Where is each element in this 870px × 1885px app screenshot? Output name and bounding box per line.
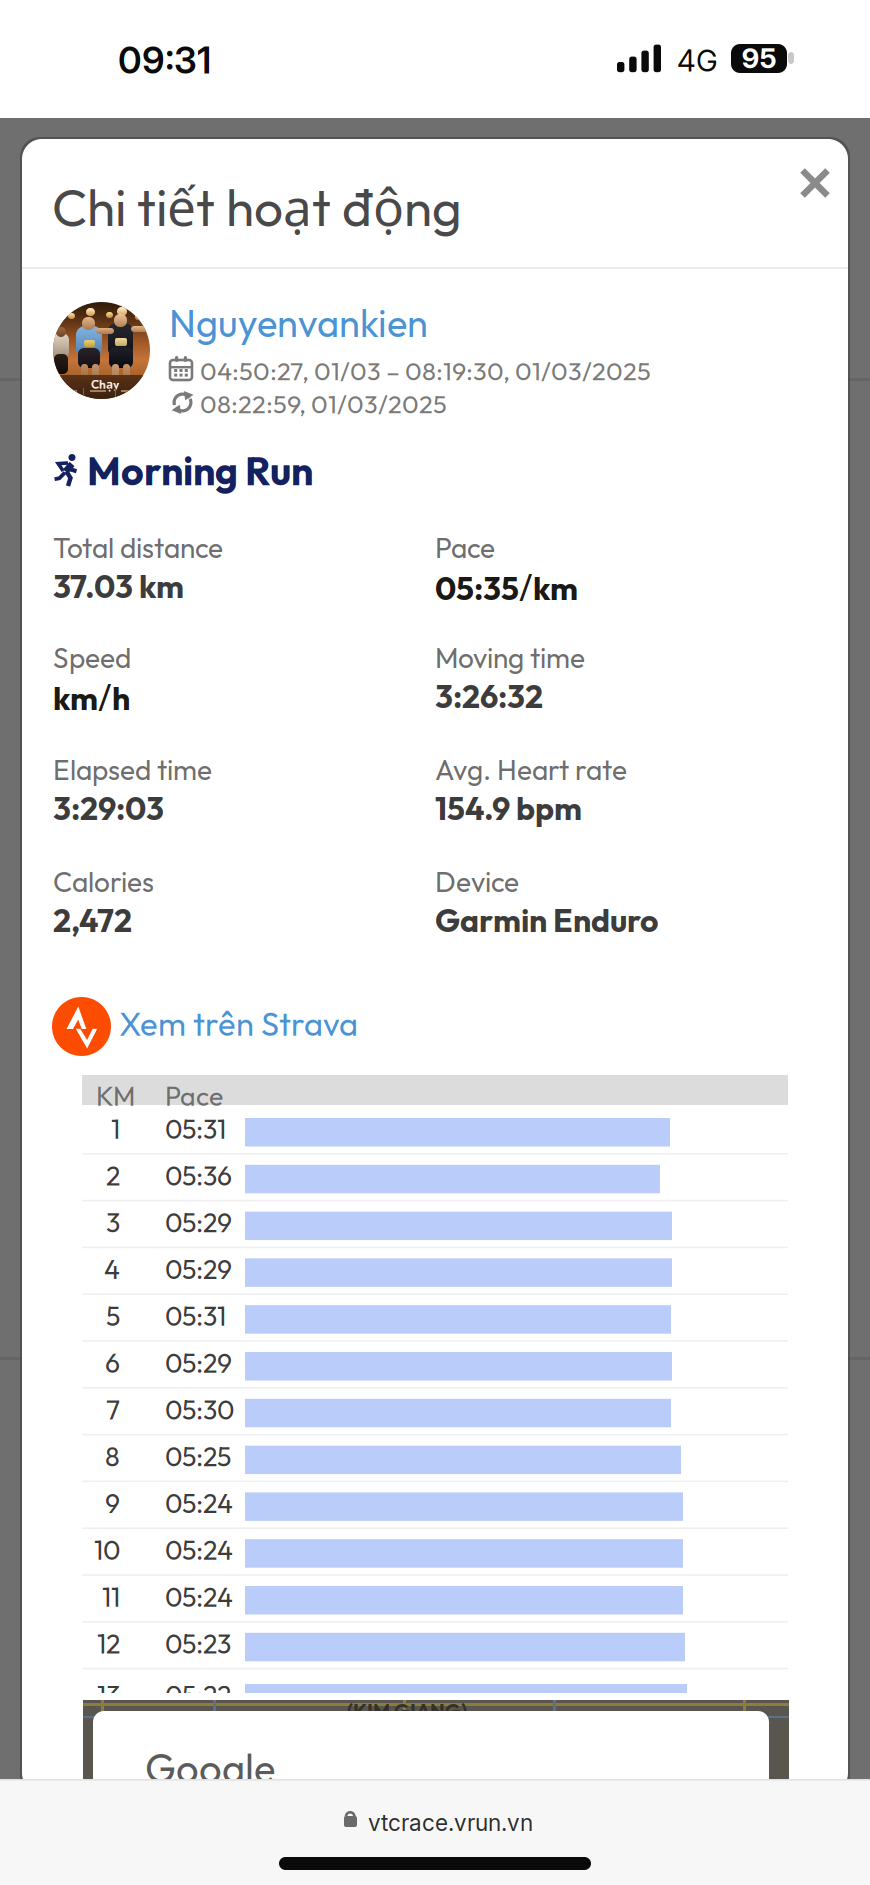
staticText: Moving time	[435, 640, 585, 675]
staticText: 5	[106, 1299, 120, 1333]
staticText: 05:25	[165, 1440, 231, 1473]
staticText: vtcrace.vrun.vn	[368, 1809, 533, 1836]
staticText: 2	[106, 1159, 120, 1192]
staticText: 05:31	[165, 1299, 226, 1333]
staticText: 05:29	[165, 1252, 232, 1286]
staticText: 05:29	[165, 1206, 232, 1239]
staticText: Xem trên Strava	[119, 1003, 358, 1044]
button[interactable]: vtcrace.vrun.vn	[344, 1809, 548, 1835]
staticText: 08:22:59, 01/03/2025	[200, 388, 447, 420]
staticText: 05:24	[165, 1533, 233, 1567]
staticText: 05:24	[165, 1486, 233, 1520]
staticText: 1	[111, 1112, 120, 1146]
staticText: 13	[97, 1678, 120, 1712]
staticText: Chạy	[91, 376, 119, 392]
staticText: 09:31	[118, 38, 211, 82]
staticText: Calories	[53, 864, 154, 899]
staticText: Morning Run	[87, 446, 313, 496]
staticText: Avg. Heart rate	[435, 752, 627, 787]
staticText: Google	[145, 1743, 275, 1793]
staticText: 6	[105, 1346, 120, 1380]
button[interactable]: Nguyenvankien	[169, 301, 437, 345]
staticText: 05:24	[165, 1580, 233, 1614]
staticText: 05:22	[165, 1678, 231, 1712]
staticText: 05:35/km	[435, 566, 578, 609]
staticText: Pace	[435, 530, 495, 565]
staticText: 4G	[677, 43, 718, 78]
staticText: 3:26:32	[435, 676, 543, 716]
staticText: 05:30	[165, 1393, 234, 1426]
staticText: Nguyenvankien	[169, 299, 428, 347]
button[interactable]: Close	[777, 145, 853, 221]
staticText: 7	[106, 1393, 120, 1426]
staticText: 05:23	[165, 1627, 231, 1660]
staticText: KM	[96, 1079, 135, 1113]
staticText: 05:29	[165, 1346, 232, 1380]
button[interactable]: Xem trên Strava	[52, 997, 372, 1053]
staticText: 2,472	[53, 900, 132, 940]
staticText: 12	[97, 1627, 120, 1660]
staticText: (KIM GIANG)	[347, 1698, 467, 1723]
staticText: 10	[94, 1533, 120, 1567]
staticText: Device	[435, 864, 519, 899]
staticText: 154.9 bpm	[435, 788, 582, 828]
staticText: 4	[104, 1252, 120, 1286]
staticText: Garmin Enduro	[435, 900, 658, 940]
staticText: 95	[741, 41, 776, 75]
staticText: Speed	[53, 640, 131, 675]
staticText: 05:36	[165, 1159, 232, 1192]
staticText: Elapsed time	[53, 752, 212, 787]
staticText: Total distance	[53, 530, 223, 565]
staticText: 3:29:03	[53, 788, 164, 828]
staticText: Pace	[165, 1079, 223, 1113]
staticText: 11	[102, 1580, 120, 1614]
staticText: km/h	[53, 676, 130, 719]
staticText: 37.03 km	[53, 566, 184, 606]
staticText: 04:50:27, 01/03 – 08:19:30, 01/03/2025	[200, 355, 651, 387]
staticText: 9	[105, 1486, 120, 1520]
staticText: 8	[105, 1440, 120, 1473]
staticText: Chi tiết hoạt động	[52, 171, 462, 241]
staticText: 05:31	[165, 1112, 226, 1146]
staticText: 3	[106, 1206, 120, 1239]
